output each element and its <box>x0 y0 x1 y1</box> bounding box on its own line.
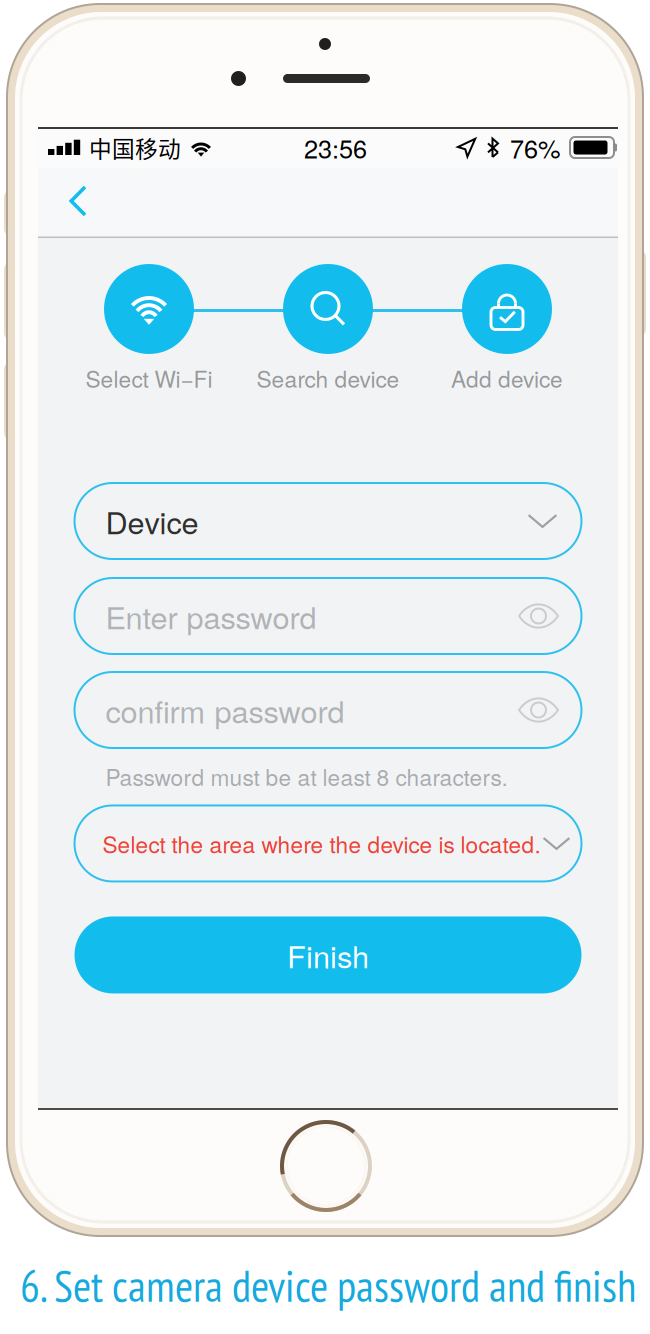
staticText: Enter password <box>105 594 316 638</box>
staticText: Search device <box>256 362 399 394</box>
staticText: 中国移动 <box>89 131 181 164</box>
button[interactable]: Select the area where the device is loca… <box>74 805 581 881</box>
staticText: Password must be at least 8 characters. <box>105 760 507 792</box>
button[interactable]: Show confirm password <box>511 692 565 728</box>
staticText: Finish <box>287 933 369 977</box>
staticText: 23:56 <box>304 129 367 166</box>
button[interactable]: Back <box>52 171 105 235</box>
staticText: 76% <box>510 129 561 166</box>
staticText: Select the area where the device is loca… <box>102 827 540 860</box>
button[interactable]: Finish <box>74 916 581 993</box>
button[interactable]: Device <box>74 483 581 559</box>
button[interactable]: Show password <box>511 598 565 634</box>
staticText: Select Wi−Fi <box>85 362 212 394</box>
staticText: Add device <box>451 362 563 394</box>
staticText: confirm password <box>105 688 344 732</box>
staticText: 6. Set camera device password and finish <box>20 1257 636 1314</box>
staticText: Device <box>105 499 198 543</box>
